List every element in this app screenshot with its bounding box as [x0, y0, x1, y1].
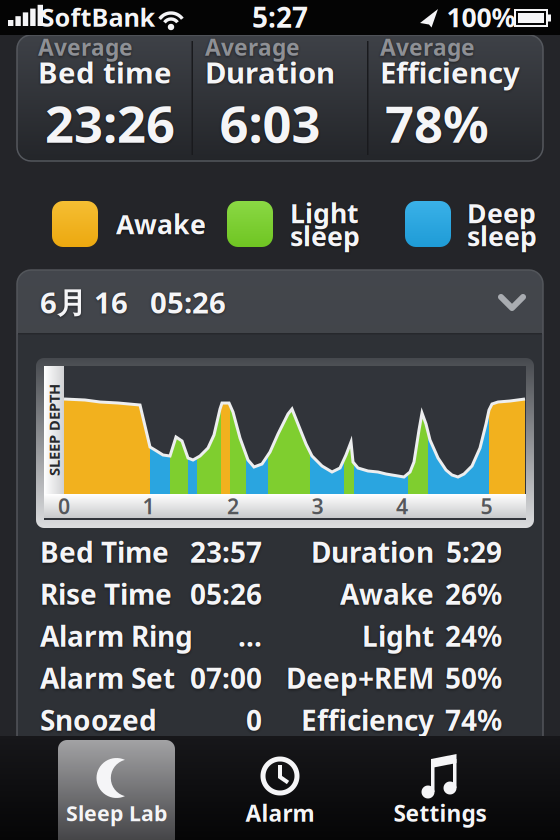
staticText: 5:27 [252, 0, 308, 36]
staticText: Light [290, 195, 359, 231]
staticText: Awake [340, 575, 434, 613]
staticText: 50% [445, 659, 502, 697]
staticText: 74% [445, 701, 502, 739]
staticText: 6:03 [219, 89, 320, 157]
staticText: 26% [445, 575, 502, 613]
staticText: Average [205, 32, 300, 62]
staticText: SoftBank [40, 0, 155, 34]
button[interactable]: Select night [17, 270, 543, 334]
staticText: 4 [396, 492, 408, 520]
staticText: 05:26 [190, 575, 262, 613]
button[interactable]: Settings [380, 740, 500, 840]
staticText: Bed time [38, 52, 172, 91]
staticText: Duration [311, 533, 434, 571]
staticText: 23:26 [45, 89, 175, 157]
staticText: 07:00 [190, 659, 262, 697]
staticText: Rise Time [40, 575, 172, 613]
staticText: 3 [311, 492, 323, 520]
staticText: 0 [58, 492, 70, 520]
staticText: ... [238, 617, 262, 655]
button[interactable]: Alarm [220, 740, 340, 840]
staticText: 5:29 [446, 533, 502, 571]
staticText: SLEEP DEPTH [8, 420, 100, 440]
staticText: 2 [227, 492, 239, 520]
staticText: Alarm [245, 798, 314, 828]
staticText: Sleep Lab [66, 799, 167, 827]
staticText: Efficiency [301, 701, 434, 739]
staticText: sleep [467, 218, 537, 254]
staticText: sleep [290, 218, 360, 254]
staticText: Deep [467, 195, 536, 231]
staticText: Efficiency [380, 52, 520, 91]
staticText: Settings [393, 798, 486, 828]
staticText: Average [38, 32, 133, 62]
staticText: Duration [205, 52, 335, 91]
staticText: Light [362, 617, 434, 655]
button[interactable]: Sleep Lab [58, 740, 175, 840]
staticText: 05:26 [150, 282, 226, 321]
staticText: Alarm Set [40, 659, 175, 697]
staticText: 100% [446, 0, 515, 35]
staticText: 6月 16 [40, 282, 128, 321]
staticText: Awake [116, 206, 206, 242]
staticText: Average [380, 32, 475, 62]
staticText: Snoozed [40, 701, 157, 739]
staticText: 0 [246, 701, 262, 739]
staticText: Deep+REM [286, 659, 434, 697]
staticText: 1 [142, 492, 154, 520]
staticText: 78% [385, 89, 489, 157]
staticText: Alarm Ring [40, 617, 193, 655]
staticText: Bed Time [40, 533, 169, 571]
staticText: 23:57 [190, 533, 262, 571]
staticText: 5 [480, 492, 492, 520]
staticText: 24% [445, 617, 502, 655]
